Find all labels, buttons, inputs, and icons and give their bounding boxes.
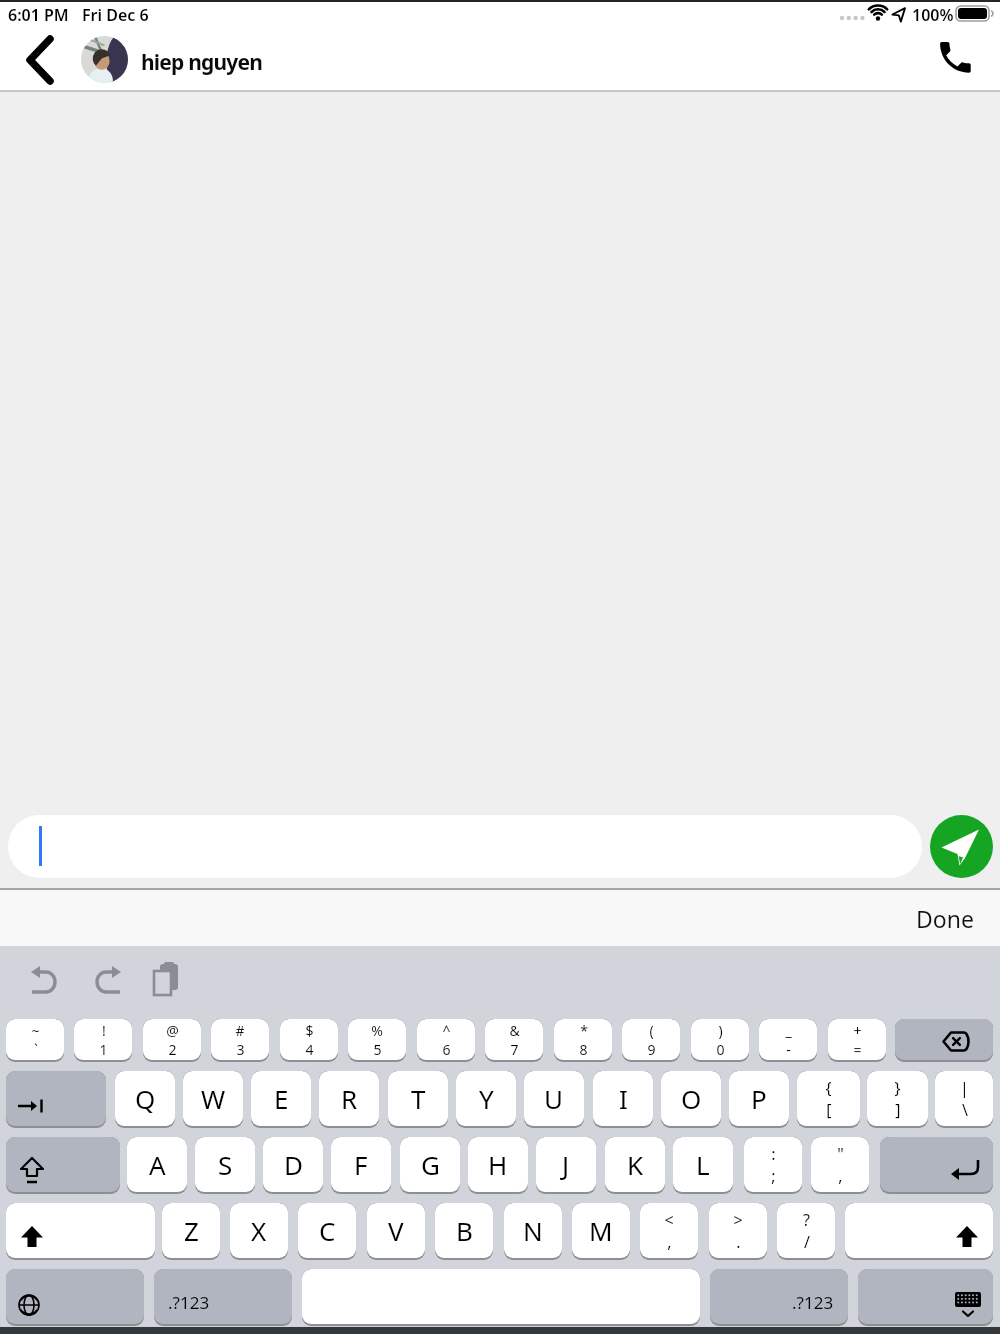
button[interactable] [152,962,182,998]
button[interactable]: Z [162,1203,220,1260]
button[interactable]: .?123 [710,1269,848,1326]
button[interactable]: > [709,1203,767,1260]
button[interactable]: N [504,1203,562,1260]
button[interactable]: ? [777,1203,835,1260]
staticText: . [736,1231,741,1253]
button[interactable]: L [673,1137,733,1194]
button[interactable]: & [485,1019,543,1062]
button[interactable]: K [605,1137,665,1194]
staticText: 3 [236,1040,245,1059]
button[interactable]: D [263,1137,323,1194]
button[interactable]: C [298,1203,356,1260]
staticText: hiep nguyen [141,48,263,77]
button[interactable]: ~ [6,1019,64,1062]
button[interactable]: " [811,1137,869,1194]
button[interactable]: ! [74,1019,132,1062]
button[interactable]: M [572,1203,630,1260]
button[interactable] [88,966,122,998]
button[interactable]: ^ [417,1019,475,1062]
button[interactable]: J [536,1137,596,1194]
staticText: 6:01 PM [8,4,69,26]
button[interactable] [930,815,993,878]
button[interactable]: X [230,1203,288,1260]
staticText: + [853,1021,862,1040]
staticText: 5 [373,1040,382,1059]
staticText: Done [916,903,974,934]
staticText: D [284,1147,303,1182]
staticText: M [589,1213,613,1248]
button[interactable]: @ [143,1019,201,1062]
button[interactable]: ) [691,1019,749,1062]
button[interactable] [895,1019,993,1062]
button[interactable]: O [661,1071,721,1128]
staticText: - [786,1040,791,1059]
button[interactable]: A [127,1137,187,1194]
staticText: T [411,1081,426,1116]
button[interactable]: B [435,1203,493,1260]
button[interactable]: E [251,1071,311,1128]
staticText: Q [135,1081,156,1116]
button[interactable]: F [331,1137,391,1194]
button[interactable] [81,36,128,83]
staticText: ) [718,1021,723,1040]
button[interactable]: P [729,1071,789,1128]
button[interactable]: Done [900,896,990,940]
button[interactable]: U [524,1071,584,1128]
button[interactable] [935,37,975,77]
staticText: X [251,1213,267,1248]
button[interactable] [6,1203,155,1260]
button[interactable]: I [593,1071,653,1128]
button[interactable] [30,966,64,998]
button[interactable]: R [319,1071,379,1128]
button[interactable]: G [400,1137,460,1194]
staticText: L [696,1147,710,1182]
button[interactable] [302,1269,700,1326]
staticText: = [853,1040,862,1059]
button[interactable] [6,1071,106,1128]
button[interactable]: .?123 [154,1269,292,1326]
button[interactable] [6,1269,144,1326]
staticText: Y [479,1081,494,1116]
button[interactable]: Q [115,1071,175,1128]
staticText: K [627,1147,644,1182]
button[interactable] [880,1137,993,1194]
button[interactable]: : [744,1137,802,1194]
staticText: $ [305,1021,314,1040]
button[interactable]: $ [280,1019,338,1062]
button[interactable] [858,1269,993,1326]
button[interactable]: V [367,1203,425,1260]
staticText: F [354,1147,368,1182]
staticText: ~ [31,1021,40,1040]
staticText: # [235,1021,245,1040]
button[interactable]: H [468,1137,528,1194]
staticText: 1 [99,1040,108,1059]
button[interactable]: < [640,1203,698,1260]
button[interactable] [845,1203,993,1260]
staticText: 2 [168,1040,177,1059]
staticText: { [825,1077,832,1099]
button[interactable] [8,815,922,878]
staticText: " [837,1143,844,1165]
button[interactable]: _ [759,1019,817,1062]
button[interactable]: % [348,1019,406,1062]
staticText: ] [895,1099,901,1121]
button[interactable]: + [828,1019,886,1062]
staticText: C [319,1213,336,1248]
staticText: % [371,1021,383,1040]
button[interactable]: { [797,1071,860,1128]
button[interactable]: T [388,1071,448,1128]
button[interactable]: # [211,1019,269,1062]
button[interactable]: ( [622,1019,680,1062]
button[interactable]: } [867,1071,928,1128]
button[interactable]: * [554,1019,612,1062]
button[interactable] [6,1137,120,1194]
button[interactable]: | [935,1071,993,1128]
staticText: Z [184,1213,199,1248]
button[interactable]: S [195,1137,255,1194]
staticText: / [804,1231,810,1253]
staticText: ^ [442,1021,451,1040]
button[interactable]: W [183,1071,243,1128]
staticText: Fri Dec 6 [82,4,149,26]
button[interactable] [24,36,56,84]
button[interactable]: Y [456,1071,516,1128]
